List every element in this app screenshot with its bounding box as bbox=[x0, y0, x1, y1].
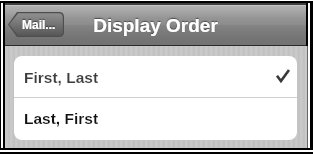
button[interactable]: Back to Mail bbox=[8, 12, 64, 37]
button[interactable]: Last, First bbox=[14, 98, 297, 140]
button[interactable]: First, Last bbox=[14, 56, 297, 97]
staticText: First, Last bbox=[24, 69, 99, 86]
staticText: Last, First bbox=[24, 110, 99, 127]
staticText: Mail... bbox=[22, 18, 56, 31]
staticText: Display Order bbox=[5, 15, 306, 36]
